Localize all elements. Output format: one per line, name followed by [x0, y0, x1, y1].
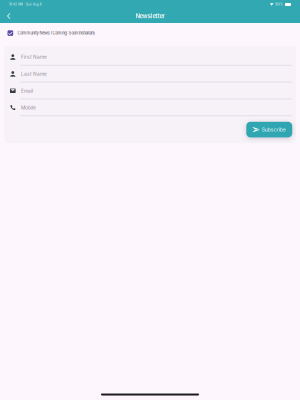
button[interactable]: Subscribe	[246, 122, 292, 137]
staticText: Community News (Coming Soon Inshallah)	[17, 31, 95, 36]
staticText: First Name	[21, 54, 47, 60]
staticText: Newsletter	[135, 12, 164, 20]
staticText: 100%	[275, 3, 283, 6]
button[interactable]: Community News (Coming Soon Inshallah)	[0, 23, 300, 47]
staticText: Mobile	[21, 105, 36, 111]
button[interactable]: Back	[0, 9, 17, 23]
staticText: Email	[21, 88, 33, 94]
staticText: Last Name	[21, 71, 47, 77]
staticText: 10:42 AM	[9, 3, 23, 6]
staticText: Sun Aug 6	[26, 3, 42, 6]
staticText: Subscribe	[262, 126, 286, 133]
